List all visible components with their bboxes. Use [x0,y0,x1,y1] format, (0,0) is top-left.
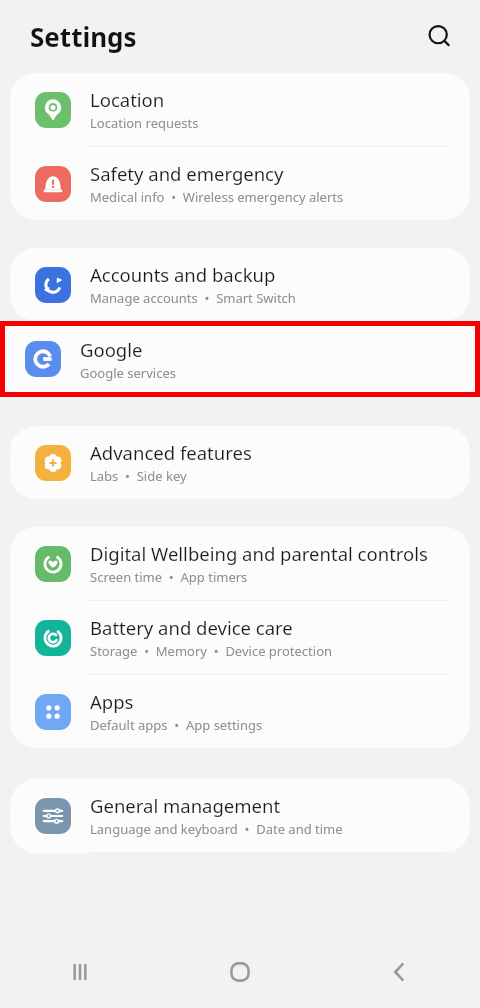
staticText: Apps [90,689,134,714]
button[interactable]: Recent apps [0,935,160,1008]
button[interactable]: Back [320,935,480,1008]
staticText: Storage • Memory • Device protection [90,642,333,660]
button[interactable]: Search settings [418,15,462,59]
staticText: Default apps • App settings [90,716,263,734]
staticText: Battery and device care [90,615,293,640]
staticText: Google [80,337,143,362]
staticText: Medical info • Wireless emergency alerts [90,188,344,206]
button[interactable]: Digital Wellbeing and parental controls [10,527,470,600]
button[interactable]: Battery and device care [10,601,470,674]
button[interactable]: Safety and emergency [10,147,470,220]
button[interactable]: Apps [10,675,470,748]
staticText: Language and keyboard • Date and time [90,820,343,838]
staticText: Advanced features [90,440,252,465]
staticText: Screen time • App timers [90,568,248,586]
staticText: Accounts and backup [90,262,276,287]
staticText: General management [90,793,281,818]
button[interactable]: General management [10,779,470,852]
staticText: Google services [80,364,176,382]
button[interactable]: Google [6,327,474,391]
staticText: Location [90,87,165,112]
button[interactable]: Home [160,935,320,1008]
staticText: Digital Wellbeing and parental controls [90,541,428,566]
staticText: Labs • Side key [90,467,187,485]
staticText: Location requests [90,114,199,132]
staticText: Manage accounts • Smart Switch [90,289,296,307]
staticText: Safety and emergency [90,161,284,186]
button[interactable]: Location [10,73,470,146]
button[interactable]: Accounts and backup [10,248,470,321]
button[interactable]: Advanced features [10,426,470,499]
staticText: Settings [30,19,137,54]
